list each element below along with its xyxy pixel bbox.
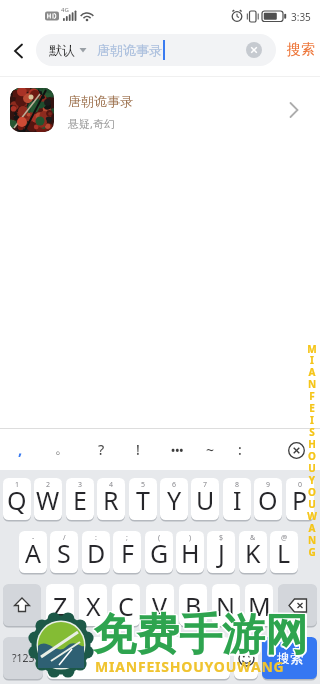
staticText: 2 [46, 480, 51, 490]
staticText: ; [126, 533, 128, 543]
button[interactable] [246, 42, 262, 58]
staticText: O [258, 483, 278, 517]
staticText: & [250, 533, 256, 543]
button[interactable]: ( [145, 531, 173, 573]
staticText: 4 [109, 480, 114, 490]
button[interactable]: Z [46, 584, 74, 626]
staticText: ?123 [12, 651, 35, 665]
button[interactable]: 0 [286, 478, 314, 520]
staticText: K [245, 536, 261, 570]
staticText: 搜索 [287, 41, 315, 59]
staticText: MIANFEISHOUYOUWANG [95, 657, 285, 676]
staticText: Y [167, 483, 182, 517]
staticText: 默认 [49, 42, 75, 58]
button[interactable]: ?123 [3, 637, 43, 679]
staticText: / [63, 533, 66, 543]
staticText: F [121, 536, 134, 570]
staticText: ••• [171, 442, 184, 457]
button[interactable]: @ [270, 531, 298, 573]
button[interactable]: ~ [196, 428, 224, 470]
button[interactable]: C [112, 584, 140, 626]
button[interactable]: / [50, 531, 78, 573]
staticText: H [181, 536, 200, 570]
staticText: ? [98, 440, 105, 459]
button[interactable]: : [82, 531, 110, 573]
button[interactable]: 7 [191, 478, 219, 520]
staticText: : [238, 440, 242, 459]
button[interactable]: ; [113, 531, 141, 573]
staticText: 搜索 [277, 650, 303, 666]
staticText: ~ [206, 440, 215, 459]
button[interactable]: ••• [160, 428, 194, 470]
staticText: M [248, 589, 271, 623]
staticText: 免费手游网 [95, 608, 310, 662]
button[interactable]: 。 [48, 428, 76, 470]
staticText: 8 [235, 480, 240, 490]
staticText: 免费手游网 [93, 607, 308, 661]
button[interactable] [47, 637, 230, 679]
button[interactable]: B [179, 584, 207, 626]
staticText: 7 [203, 480, 208, 490]
staticText: 悬疑,奇幻 [68, 116, 115, 131]
button[interactable] [4, 38, 34, 64]
button[interactable]: & [239, 531, 267, 573]
staticText: B [185, 589, 202, 623]
button[interactable]: X [79, 584, 107, 626]
button[interactable]: M [245, 584, 273, 626]
button[interactable]: , [6, 428, 34, 470]
staticText: W [36, 483, 60, 517]
button[interactable]: 4 [97, 478, 125, 520]
staticText: 免费手游网 [94, 607, 309, 661]
button[interactable]: 2 [34, 478, 62, 520]
staticText: ! [136, 440, 140, 459]
staticText: 唐朝诡事录 [97, 42, 162, 58]
staticText: 3:35 [291, 10, 311, 24]
button[interactable]: 唐朝诡事录 [0, 77, 320, 143]
staticText: , [18, 439, 23, 459]
button[interactable] [278, 584, 317, 626]
button[interactable] [234, 637, 258, 679]
button[interactable] [282, 436, 310, 464]
staticText: 唐朝诡事录 [68, 93, 133, 109]
staticText: S [57, 536, 71, 570]
staticText: J [218, 536, 225, 570]
button[interactable]: 8 [223, 478, 251, 520]
button[interactable] [3, 584, 41, 626]
staticText: 免费手游网 [92, 607, 307, 661]
button[interactable]: 5 [129, 478, 157, 520]
staticText: T [136, 483, 150, 517]
button[interactable]: - [19, 531, 47, 573]
button[interactable]: ? [87, 428, 115, 470]
staticText: ) [189, 533, 192, 543]
staticText: 6 [172, 480, 177, 490]
button[interactable]: 默认 [36, 34, 276, 66]
button[interactable]: : [226, 428, 254, 470]
staticText: M I A N F E I S H O U Y O U W A N G [304, 342, 320, 559]
staticText: C [118, 589, 134, 623]
button[interactable]: 6 [160, 478, 188, 520]
button[interactable]: $ [207, 531, 235, 573]
staticText: 免费手游网 [94, 609, 309, 663]
staticText: P [292, 483, 308, 517]
staticText: @ [281, 533, 288, 543]
staticText: D [87, 536, 106, 570]
staticText: N [216, 589, 236, 623]
button[interactable]: ) [176, 531, 204, 573]
button[interactable]: ! [124, 428, 152, 470]
staticText: 1 [15, 480, 20, 490]
button[interactable]: 1 [3, 478, 31, 520]
button[interactable]: N [212, 584, 240, 626]
button[interactable]: V [146, 584, 174, 626]
button[interactable]: 搜索 [262, 637, 317, 679]
staticText: 免费手游网 [93, 610, 308, 664]
staticText: I [233, 483, 242, 517]
staticText: X [86, 589, 101, 623]
staticText: U [196, 483, 215, 517]
button[interactable]: 3 [66, 478, 94, 520]
button[interactable]: 搜索 [282, 36, 320, 64]
staticText: ( [158, 533, 161, 543]
staticText: G [150, 536, 169, 570]
button[interactable]: 9 [254, 478, 282, 520]
staticText: R [103, 483, 119, 517]
staticText: 4G [61, 6, 69, 14]
